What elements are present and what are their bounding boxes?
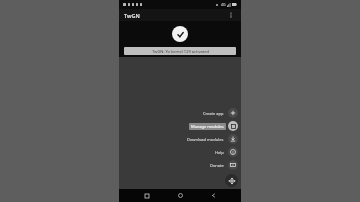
staticText: TwGN: Yo kernel 129 activated — [152, 49, 209, 54]
button[interactable]: Activated — [172, 26, 188, 42]
button[interactable]: Recents — [141, 190, 152, 201]
staticText: 4G — [221, 2, 226, 7]
button[interactable]: TwGN: Yo kernel 129 activated — [124, 47, 236, 55]
staticText: Donate — [210, 163, 224, 168]
button[interactable]: Donate — [208, 160, 238, 170]
staticText: Manage modules — [191, 124, 224, 129]
staticText: TwGN — [124, 12, 140, 19]
button[interactable]: Home — [175, 190, 186, 201]
button[interactable]: Create app — [201, 108, 238, 118]
button[interactable]: Manage modules — [189, 121, 238, 131]
staticText: Help — [215, 150, 224, 155]
button[interactable]: Back — [208, 190, 219, 201]
button[interactable]: Help — [213, 147, 238, 157]
button[interactable]: Close menu — [225, 174, 238, 187]
button[interactable]: More options — [226, 10, 236, 20]
button[interactable]: Download modules — [185, 134, 238, 144]
staticText: Download modules — [187, 137, 224, 142]
staticText: Create app — [203, 111, 224, 116]
